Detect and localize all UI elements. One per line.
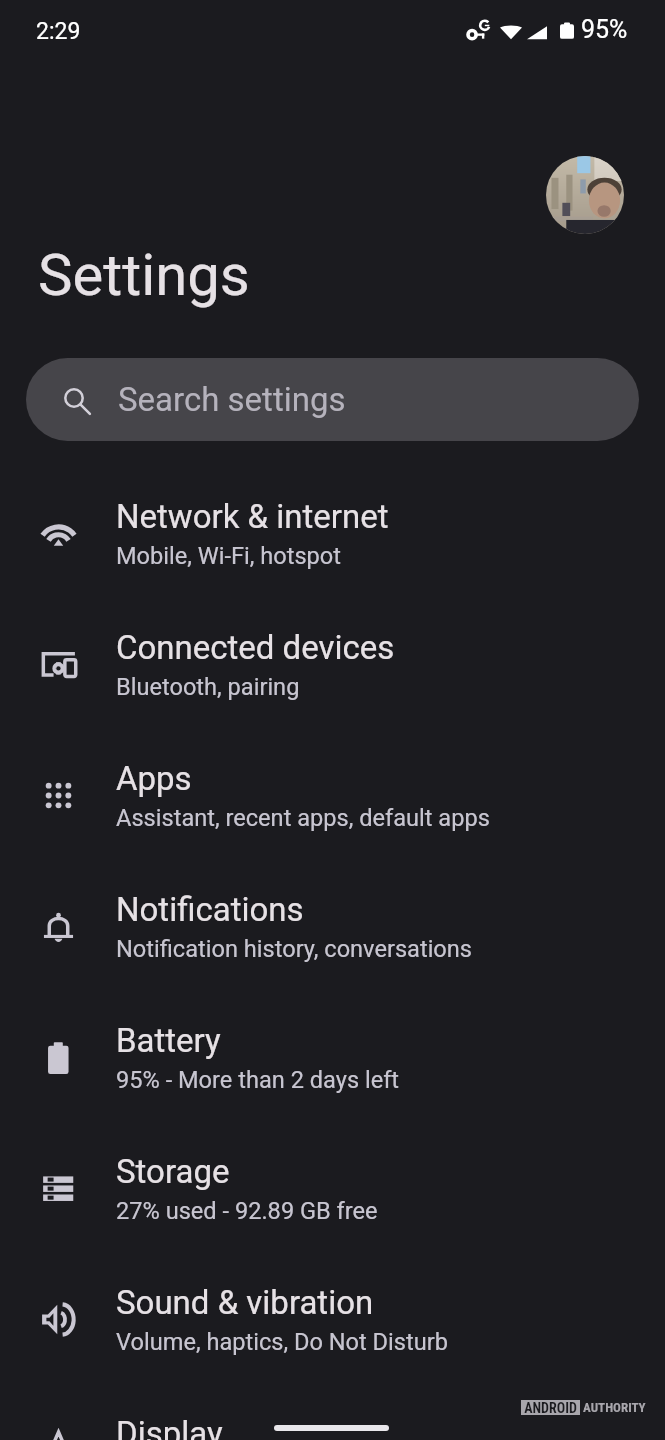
staticText: Connected devices xyxy=(116,628,395,667)
staticText: Volume, haptics, Do Not Disturb xyxy=(116,1328,448,1356)
button[interactable]: Storage xyxy=(0,1123,665,1254)
staticText: Notifications xyxy=(116,890,304,929)
staticText: 2:29 xyxy=(36,18,81,45)
staticText: AUTHORITY xyxy=(583,1400,646,1415)
staticText: Network & internet xyxy=(116,497,389,536)
button[interactable]: Notifications xyxy=(0,861,665,992)
staticText: 27% used - 92.89 GB free xyxy=(116,1197,378,1225)
button[interactable]: Apps xyxy=(0,730,665,861)
staticText: Search settings xyxy=(118,380,346,419)
staticText: 95% - More than 2 days left xyxy=(116,1066,400,1094)
staticText: Notification history, conversations xyxy=(116,935,473,963)
staticText: Mobile, Wi-Fi, hotspot xyxy=(116,542,342,570)
staticText: Battery xyxy=(116,1021,221,1060)
staticText: Settings xyxy=(38,241,250,309)
button[interactable]: Account xyxy=(546,156,624,234)
button[interactable]: Search settings xyxy=(26,358,639,441)
staticText: 95% xyxy=(581,15,628,44)
button[interactable]: Connected devices xyxy=(0,599,665,730)
button[interactable]: Network & internet xyxy=(0,468,665,599)
staticText: ANDROID xyxy=(524,1400,577,1415)
staticText: Storage xyxy=(116,1152,230,1191)
button[interactable]: Battery xyxy=(0,992,665,1123)
staticText: Sound & vibration xyxy=(116,1283,374,1322)
staticText: Bluetooth, pairing xyxy=(116,673,300,701)
button[interactable]: Display xyxy=(0,1385,665,1440)
staticText: Display xyxy=(116,1414,223,1440)
staticText: Assistant, recent apps, default apps xyxy=(116,804,490,832)
staticText: Apps xyxy=(116,759,192,798)
button[interactable]: Sound & vibration xyxy=(0,1254,665,1385)
